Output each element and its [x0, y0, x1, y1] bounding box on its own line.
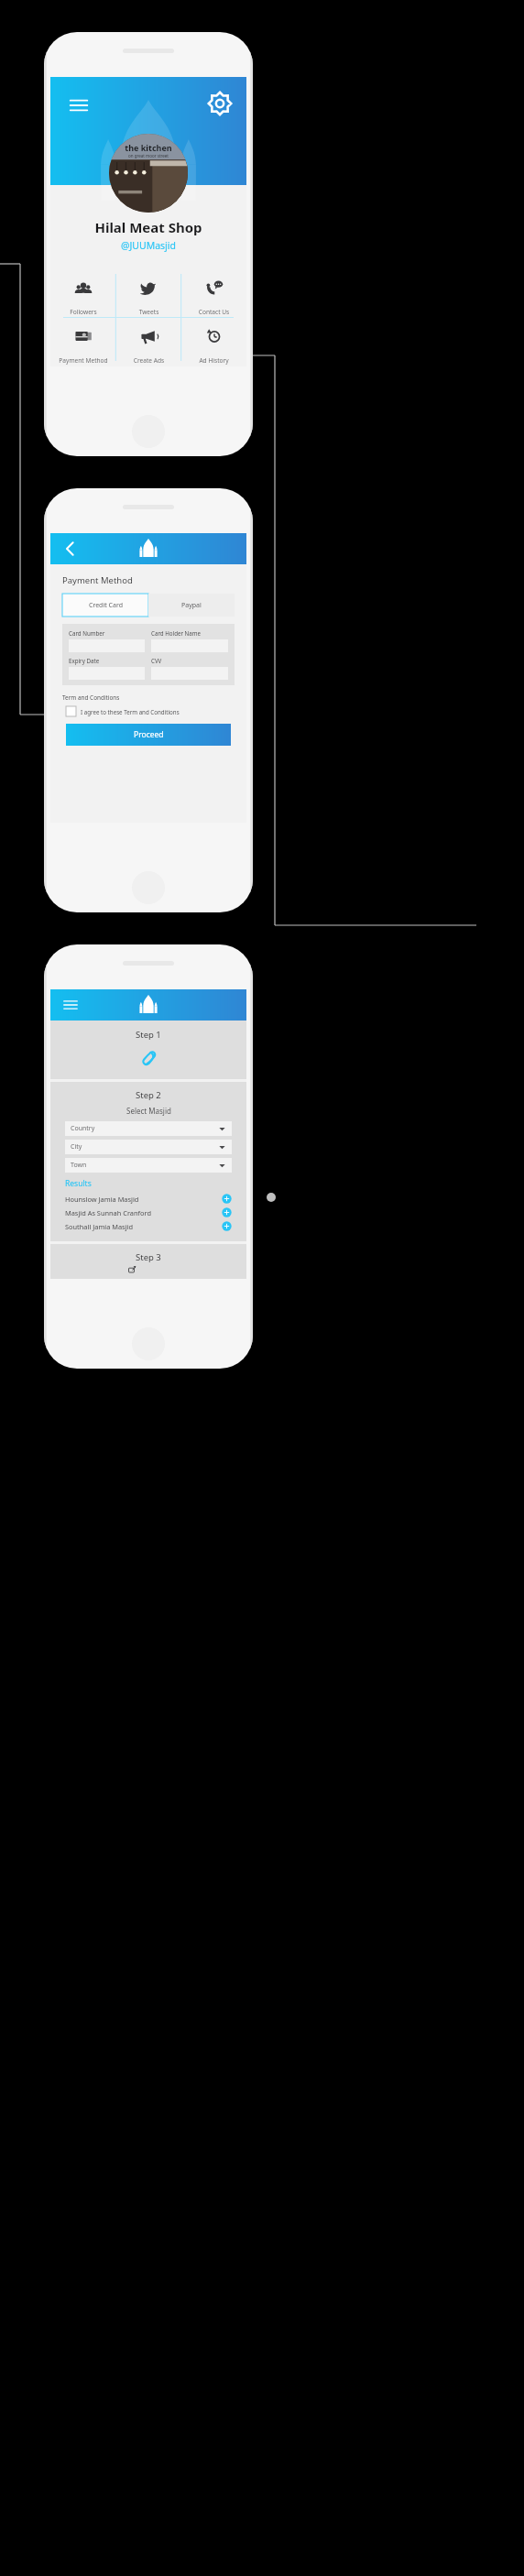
staticText: Paypal [181, 601, 202, 610]
staticText: Create Ads [116, 356, 181, 365]
button[interactable]: Back [60, 539, 80, 559]
button[interactable]: Masjid As Sunnah Cranford [65, 1206, 232, 1219]
staticText: Hilal Meat Shop [50, 218, 246, 236]
button[interactable]: Followers [50, 268, 116, 317]
button[interactable]: Town [65, 1158, 232, 1173]
button[interactable]: Contact Us [181, 268, 246, 317]
staticText: Step 3 [136, 1251, 161, 1263]
staticText: Tweets [116, 308, 181, 316]
staticText: Payment Method [50, 356, 116, 365]
staticText: Expiry Date [69, 657, 100, 664]
button[interactable]: Country [65, 1121, 232, 1136]
button[interactable]: Tweets [116, 268, 181, 317]
button[interactable]: Southall Jamia Masjid [65, 1219, 232, 1233]
staticText: @JUUMasjid [50, 239, 246, 252]
staticText: Term and Conditions [62, 693, 120, 702]
staticText: Card Holder Name [151, 629, 202, 637]
staticText: I agree to these Term and Conditions [81, 708, 180, 715]
button[interactable]: Credit Card [62, 594, 148, 617]
staticText: Hounslow Jamia Masjid [65, 1195, 222, 1204]
staticText: Select Masjid [126, 1106, 171, 1116]
button[interactable]: Create Ads [116, 317, 181, 366]
button[interactable]: Hounslow Jamia Masjid [65, 1192, 232, 1206]
button[interactable]: Profile photo [109, 134, 188, 213]
staticText: Results [65, 1178, 246, 1189]
staticText: the kitchen [109, 142, 188, 153]
button[interactable]: City [65, 1140, 232, 1154]
button[interactable]: Share [127, 1269, 155, 1270]
staticText: Step 2 [136, 1089, 161, 1101]
staticText: Masjid As Sunnah Cranford [65, 1208, 222, 1217]
staticText: Southall Jamia Masjid [65, 1222, 222, 1231]
staticText: Followers [50, 308, 116, 316]
button[interactable]: Ad History [181, 317, 246, 366]
button[interactable]: Menu [63, 90, 94, 121]
staticText: CVV [151, 657, 162, 664]
staticText: Contact Us [181, 308, 246, 316]
staticText: Payment Method [62, 574, 133, 586]
staticText: on great moor street [109, 153, 188, 158]
button[interactable] [69, 639, 145, 652]
staticText: Step 1 [136, 1029, 161, 1041]
button[interactable] [151, 639, 228, 652]
staticText: Country [71, 1124, 95, 1133]
staticText: Proceed [134, 729, 164, 740]
staticText: Card Number [69, 629, 105, 637]
button[interactable]: Attach [136, 1047, 160, 1071]
staticText: Town [71, 1161, 87, 1170]
button[interactable]: Paypal [148, 594, 235, 617]
staticText: City [71, 1142, 82, 1152]
button[interactable]: Menu [60, 994, 82, 1016]
staticText: Ad History [181, 356, 246, 365]
button[interactable]: I agree to these Term and Conditions [66, 706, 180, 716]
button[interactable]: Proceed [66, 724, 231, 746]
button[interactable]: Settings [204, 88, 235, 119]
button[interactable]: Payment Method [50, 317, 116, 366]
staticText: Credit Card [89, 601, 123, 610]
